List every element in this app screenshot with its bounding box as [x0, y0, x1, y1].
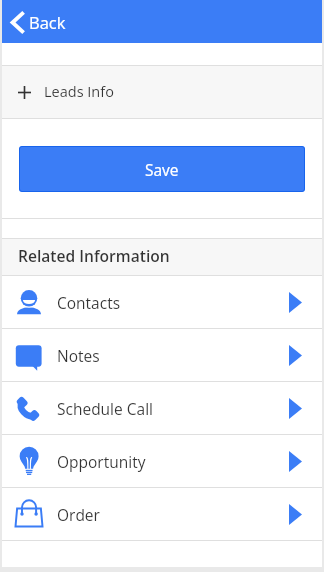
- button[interactable]: Leads Info: [2, 66, 322, 118]
- staticText: Related Information: [18, 245, 170, 266]
- button[interactable]: Back: [2, 0, 322, 43]
- button[interactable]: Order: [2, 488, 322, 540]
- button[interactable]: Contacts: [2, 276, 322, 328]
- staticText: Order: [57, 504, 100, 525]
- button[interactable]: Save: [19, 146, 305, 192]
- staticText: Leads Info: [44, 82, 114, 102]
- staticText: Contacts: [57, 292, 121, 313]
- staticText: Save: [145, 159, 179, 180]
- staticText: Opportunity: [57, 451, 146, 472]
- staticText: Back: [29, 11, 66, 33]
- button[interactable]: Schedule Call: [2, 382, 322, 434]
- staticText: Schedule Call: [57, 398, 153, 419]
- button[interactable]: Opportunity: [2, 435, 322, 487]
- staticText: Notes: [57, 345, 100, 366]
- button[interactable]: Notes: [2, 329, 322, 381]
